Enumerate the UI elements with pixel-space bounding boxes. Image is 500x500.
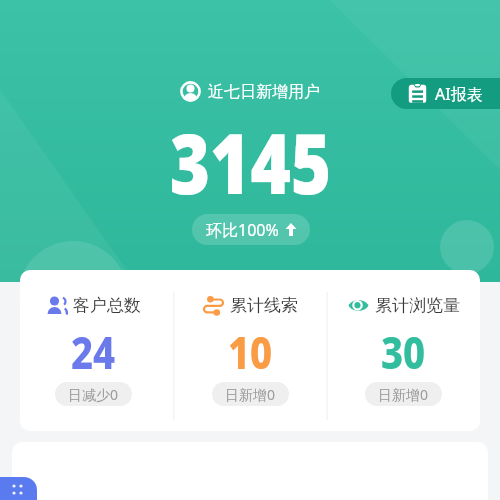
button[interactable]: 累计线索 xyxy=(174,270,327,431)
staticText: 3145 xyxy=(170,104,331,218)
button[interactable]: AI报表 xyxy=(391,78,500,109)
staticText: 客户总数 xyxy=(73,295,141,316)
staticText: 日减少0 xyxy=(68,385,119,404)
staticText: 累计浏览量 xyxy=(375,295,460,316)
staticText: 日新增0 xyxy=(378,385,429,404)
staticText: 环比100% xyxy=(206,219,279,241)
staticText: 日新增0 xyxy=(225,385,276,404)
staticText: 24 xyxy=(71,321,116,382)
button[interactable]: 环比100% xyxy=(192,214,310,245)
button[interactable]: 客户总数 xyxy=(20,270,170,431)
staticText: 10 xyxy=(228,321,273,382)
staticText: 30 xyxy=(381,321,426,382)
button[interactable]: 累计浏览量 xyxy=(327,270,480,431)
staticText: AI报表 xyxy=(435,83,483,105)
staticText: 累计线索 xyxy=(230,295,298,316)
button[interactable] xyxy=(0,477,37,500)
staticText: 近七日新增用户 xyxy=(208,82,320,102)
